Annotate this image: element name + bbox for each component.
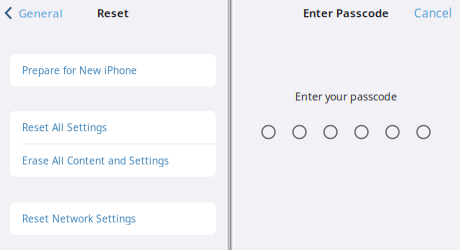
staticText: Prepare for New iPhone xyxy=(22,63,137,77)
staticText: Cancel xyxy=(414,5,452,21)
staticText: Reset All Settings xyxy=(22,120,107,134)
staticText: Enter your passcode xyxy=(295,89,397,103)
button[interactable]: Prepare for New iPhone xyxy=(10,54,216,86)
staticText: Erase All Content and Settings xyxy=(22,154,169,167)
button[interactable]: Cancel xyxy=(414,1,460,25)
staticText: Reset xyxy=(97,5,129,21)
staticText: Enter Passcode xyxy=(303,5,389,21)
staticText: General xyxy=(18,5,62,21)
button[interactable]: Reset Network Settings xyxy=(10,202,216,235)
button[interactable]: General xyxy=(0,1,62,25)
button[interactable]: Erase All Content and Settings xyxy=(10,144,216,177)
staticText: Reset Network Settings xyxy=(22,212,136,225)
button[interactable]: Reset All Settings xyxy=(10,111,216,143)
